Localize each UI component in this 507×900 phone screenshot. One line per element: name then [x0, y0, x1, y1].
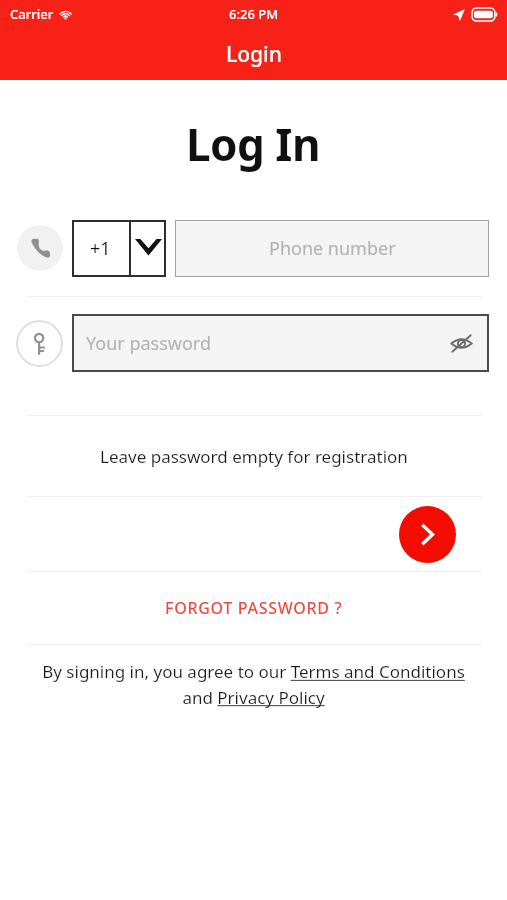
button[interactable]: By signing in, you agree to our Terms an…	[28, 660, 479, 709]
button[interactable]: Show password	[445, 327, 477, 359]
staticText: +1	[90, 236, 111, 261]
button[interactable]: Phone number	[175, 220, 489, 277]
button[interactable]: Password	[16, 320, 63, 367]
staticText: 6:26 PM	[229, 5, 279, 23]
button[interactable]: Phone	[17, 225, 63, 271]
staticText: Login	[226, 40, 282, 69]
staticText: FORGOT PASSWORD ?	[165, 597, 343, 619]
button[interactable]: FORGOT PASSWORD ?	[0, 572, 507, 644]
staticText: Log In	[186, 114, 321, 174]
staticText: By signing in, you agree to our Terms an…	[28, 660, 479, 709]
staticText: Phone number	[269, 236, 396, 261]
button[interactable]: Country code	[72, 220, 166, 277]
staticText: Your password	[86, 331, 212, 356]
button[interactable]: Sign in	[399, 506, 456, 563]
staticText: Carrier	[10, 5, 54, 23]
staticText: Leave password empty for registration	[100, 445, 408, 468]
